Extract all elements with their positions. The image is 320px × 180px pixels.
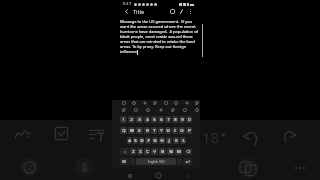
button[interactable]: Y: [158, 127, 164, 134]
button[interactable]: Font size 18: [202, 127, 226, 143]
button[interactable]: 1: [120, 116, 127, 123]
button[interactable]: N: [167, 148, 174, 155]
button[interactable]: 3: [136, 116, 143, 123]
button[interactable]: Attach: [178, 8, 184, 14]
button[interactable]: U: [165, 127, 171, 134]
staticText: !#1: [122, 160, 127, 164]
button[interactable]: Home: [154, 171, 162, 179]
button[interactable]: Recents: [126, 172, 133, 179]
button[interactable]: T: [151, 127, 157, 134]
button[interactable]: A: [127, 137, 132, 144]
button[interactable]: V: [151, 148, 158, 155]
staticText: 0: [188, 117, 191, 123]
staticText: X: [139, 149, 142, 155]
staticText: C: [146, 149, 149, 155]
button[interactable]: M: [175, 148, 182, 155]
button[interactable]: Emoji: [20, 158, 39, 177]
button[interactable]: C: [144, 148, 150, 155]
staticText: B: [161, 149, 164, 155]
staticText: R: [146, 128, 149, 134]
button[interactable]: Keyboard tool: [142, 100, 147, 105]
staticText: V: [153, 149, 156, 155]
button[interactable]: Shift: [120, 148, 129, 155]
button[interactable]: Checklist: [53, 125, 70, 142]
button[interactable]: 0: [186, 116, 192, 123]
button[interactable]: 5: [151, 116, 157, 123]
button[interactable]: Keyboard tool: [194, 107, 199, 112]
button[interactable]: Voice input: [75, 158, 94, 177]
button[interactable]: Keyboard tool: [184, 100, 189, 105]
button[interactable]: F: [145, 137, 151, 144]
button[interactable]: Search: [169, 8, 175, 14]
button[interactable]: Handwriting: [13, 124, 32, 143]
button[interactable]: I: [172, 127, 178, 134]
staticText: 5: [153, 117, 156, 123]
button[interactable]: Keyboard tool: [158, 107, 163, 112]
button[interactable]: 7: [165, 116, 171, 123]
button[interactable]: X: [137, 148, 143, 155]
button[interactable]: Title: [133, 8, 144, 15]
staticText: 3: [138, 117, 141, 123]
button[interactable]: Keyboard tool: [145, 107, 150, 112]
button[interactable]: Backspace: [183, 148, 192, 155]
button[interactable]: Keyboard tool: [152, 100, 157, 105]
button[interactable]: H: [159, 137, 165, 144]
button[interactable]: Keyboard tool: [163, 100, 168, 105]
staticText: E: [138, 128, 141, 134]
staticText: U: [166, 128, 170, 134]
button[interactable]: O: [179, 127, 185, 134]
button[interactable]: More options: [187, 8, 193, 14]
button[interactable]: L: [180, 137, 186, 144]
button[interactable]: P: [186, 127, 192, 134]
button[interactable]: B: [159, 148, 166, 155]
staticText: I: [174, 128, 176, 134]
button[interactable]: 8: [172, 116, 178, 123]
button[interactable]: S: [133, 137, 138, 144]
button[interactable]: E: [136, 127, 143, 134]
button[interactable]: Redo: [281, 127, 298, 144]
staticText: 6: [160, 117, 163, 123]
button[interactable]: Z: [130, 148, 136, 155]
staticText: 1: [122, 117, 125, 123]
button[interactable]: Keyboard tool: [121, 100, 126, 105]
button[interactable]: R: [144, 127, 150, 134]
staticText: 5:17: [123, 1, 132, 7]
button[interactable]: Keyboard tool: [170, 107, 175, 112]
button[interactable]: W: [128, 127, 135, 134]
staticText: English (US): [148, 160, 165, 164]
button[interactable]: Keyboard tool: [131, 100, 136, 105]
staticText: Q: [122, 128, 126, 134]
staticText: P: [188, 128, 191, 134]
button[interactable]: !#1: [120, 158, 129, 165]
button[interactable]: Translate: [238, 158, 258, 178]
button[interactable]: D: [139, 137, 144, 144]
button[interactable]: Back: [183, 172, 190, 179]
button[interactable]: Text format: [88, 126, 105, 143]
button[interactable]: 4: [144, 116, 150, 123]
button[interactable]: More options: [295, 167, 305, 169]
staticText: N: [169, 149, 173, 155]
staticText: Y: [160, 128, 163, 134]
button[interactable]: Back: [123, 8, 130, 15]
button[interactable]: Keyboard tool: [121, 107, 126, 112]
button[interactable]: Keyboard tool: [173, 100, 178, 105]
button[interactable]: Q: [120, 127, 127, 134]
button[interactable]: J: [166, 137, 172, 144]
staticText: 2: [130, 117, 133, 123]
button[interactable]: 6: [158, 116, 164, 123]
button[interactable]: 9: [179, 116, 185, 123]
button[interactable]: Keyboard tool: [182, 107, 187, 112]
button[interactable]: English (US): [136, 158, 176, 165]
button[interactable]: K: [173, 137, 179, 144]
staticText: Z: [132, 149, 135, 155]
button[interactable]: Keyboard tool: [194, 100, 199, 105]
button[interactable]: Undo: [241, 127, 261, 147]
button[interactable]: Keyboard tool: [133, 107, 138, 112]
button[interactable]: Enter: [183, 158, 192, 165]
button[interactable]: 2: [128, 116, 135, 123]
button[interactable]: G: [152, 137, 158, 144]
staticText: A: [128, 138, 131, 144]
staticText: 18: [202, 127, 220, 143]
